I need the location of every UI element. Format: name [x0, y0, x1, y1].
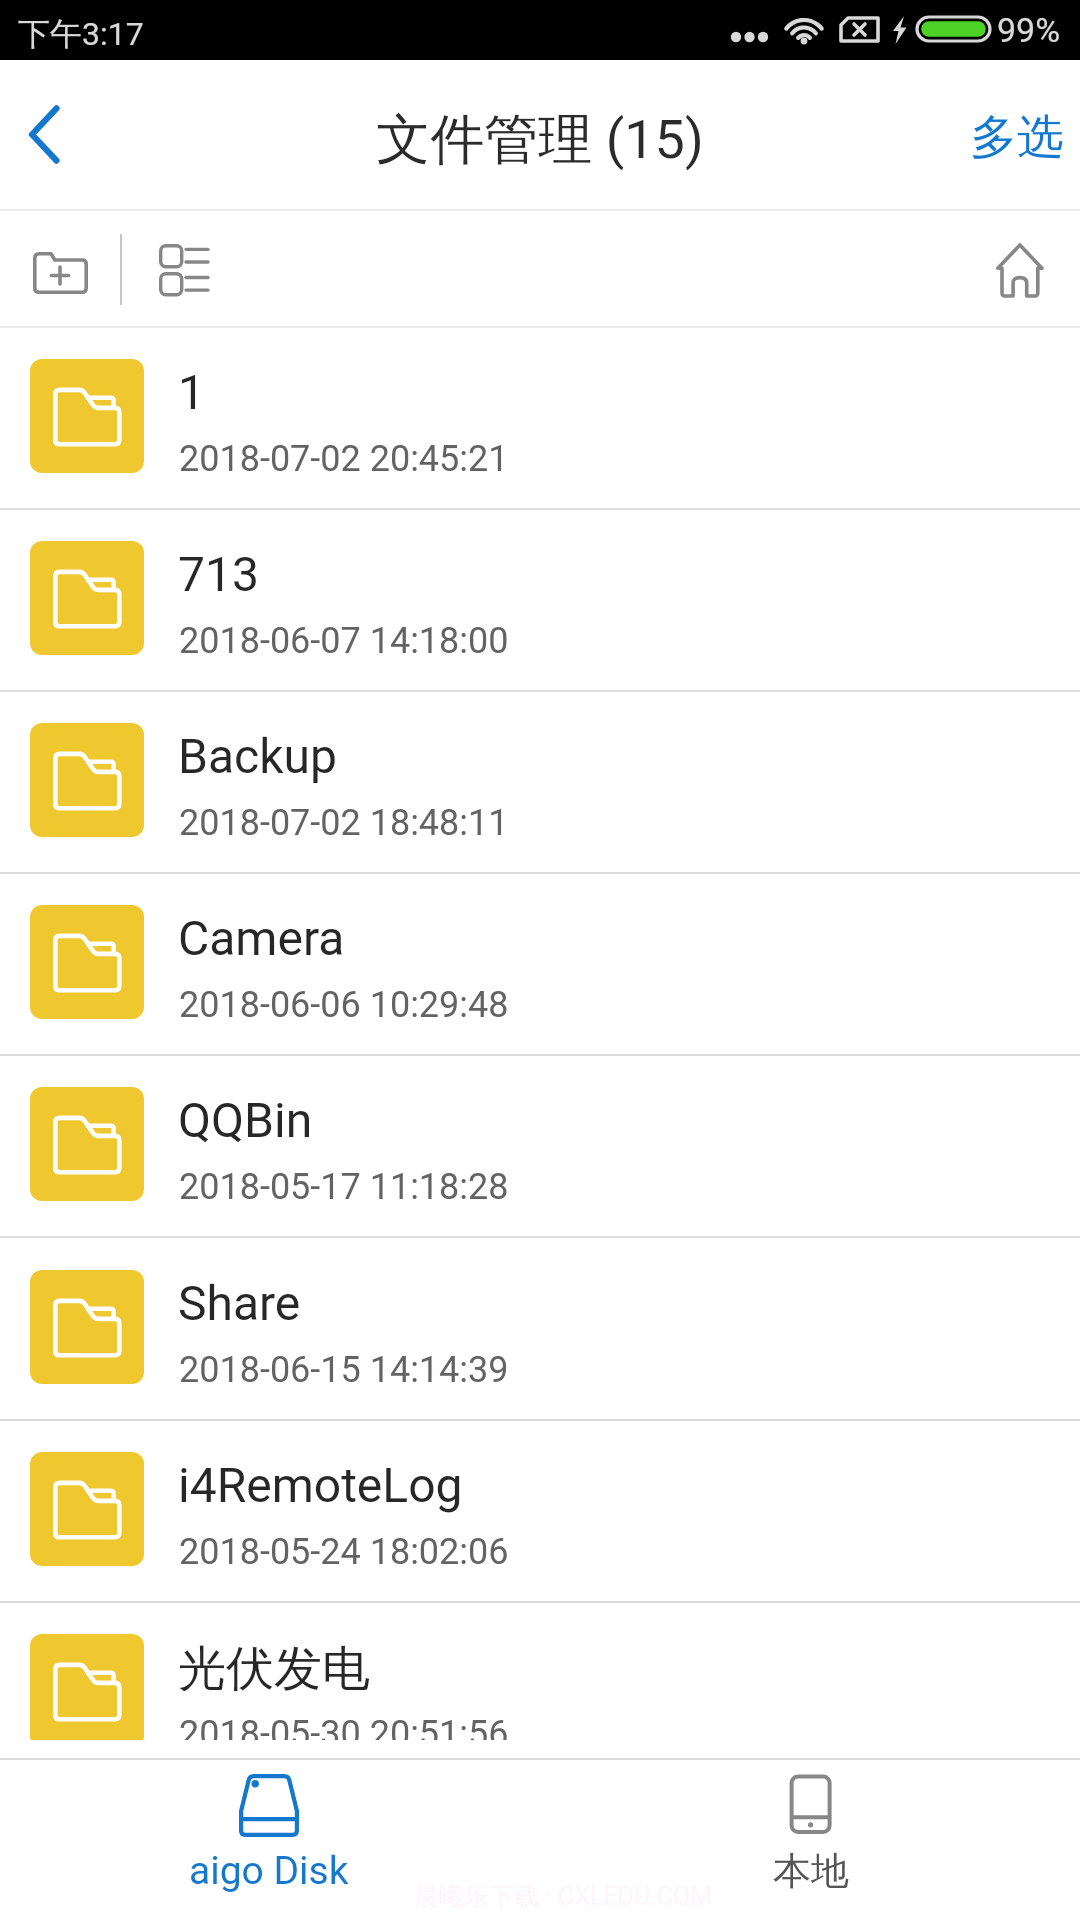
staticText: Camera [178, 910, 345, 966]
button[interactable]: 本地 [540, 1758, 1080, 1920]
staticText: 下午3:17 [18, 14, 144, 54]
staticText: 2018-05-17 11:18:28 [179, 1166, 509, 1208]
button[interactable]: QQBin [0, 1056, 1080, 1238]
staticText: 2018-07-02 20:45:21 [179, 438, 509, 480]
button[interactable]: aigo Disk [0, 1758, 540, 1920]
button[interactable]: Switch view [136, 211, 232, 326]
staticText: 2018-06-06 10:29:48 [179, 984, 509, 1026]
button[interactable]: 光伏发电 [0, 1603, 1080, 1740]
staticText: 2018-05-24 18:02:06 [179, 1531, 509, 1573]
staticText: 文件管理 (15) [0, 106, 1080, 174]
staticText: Backup [178, 728, 337, 784]
button[interactable]: 713 [0, 510, 1080, 692]
button[interactable]: New folder [0, 211, 121, 326]
staticText: Share [178, 1275, 301, 1331]
staticText: 713 [178, 546, 259, 602]
button[interactable]: Share [0, 1239, 1080, 1421]
button[interactable]: Home [960, 211, 1080, 326]
staticText: 2018-05-30 20:51:56 [179, 1713, 509, 1740]
button[interactable]: Backup [0, 692, 1080, 874]
button[interactable]: Camera [0, 874, 1080, 1056]
button[interactable]: Back [0, 60, 120, 209]
button[interactable]: 1 [0, 328, 1080, 510]
button[interactable]: i4RemoteLog [0, 1421, 1080, 1603]
staticText: 本地 [773, 1847, 849, 1895]
staticText: aigo Disk [189, 1848, 349, 1894]
staticText: 晨曦乐下载 · CXLEDU.COM [414, 1881, 713, 1912]
staticText: 99% [997, 10, 1061, 50]
staticText: i4RemoteLog [178, 1457, 463, 1513]
staticText: QQBin [178, 1092, 313, 1148]
staticText: 多选 [970, 108, 1064, 167]
staticText: 2018-07-02 18:48:11 [179, 802, 509, 844]
staticText: 1 [178, 364, 205, 420]
button[interactable]: 多选 [955, 60, 1080, 209]
staticText: 2018-06-07 14:18:00 [179, 620, 509, 662]
staticText: 光伏发电 [178, 1639, 370, 1699]
staticText: 2018-06-15 14:14:39 [179, 1349, 509, 1391]
